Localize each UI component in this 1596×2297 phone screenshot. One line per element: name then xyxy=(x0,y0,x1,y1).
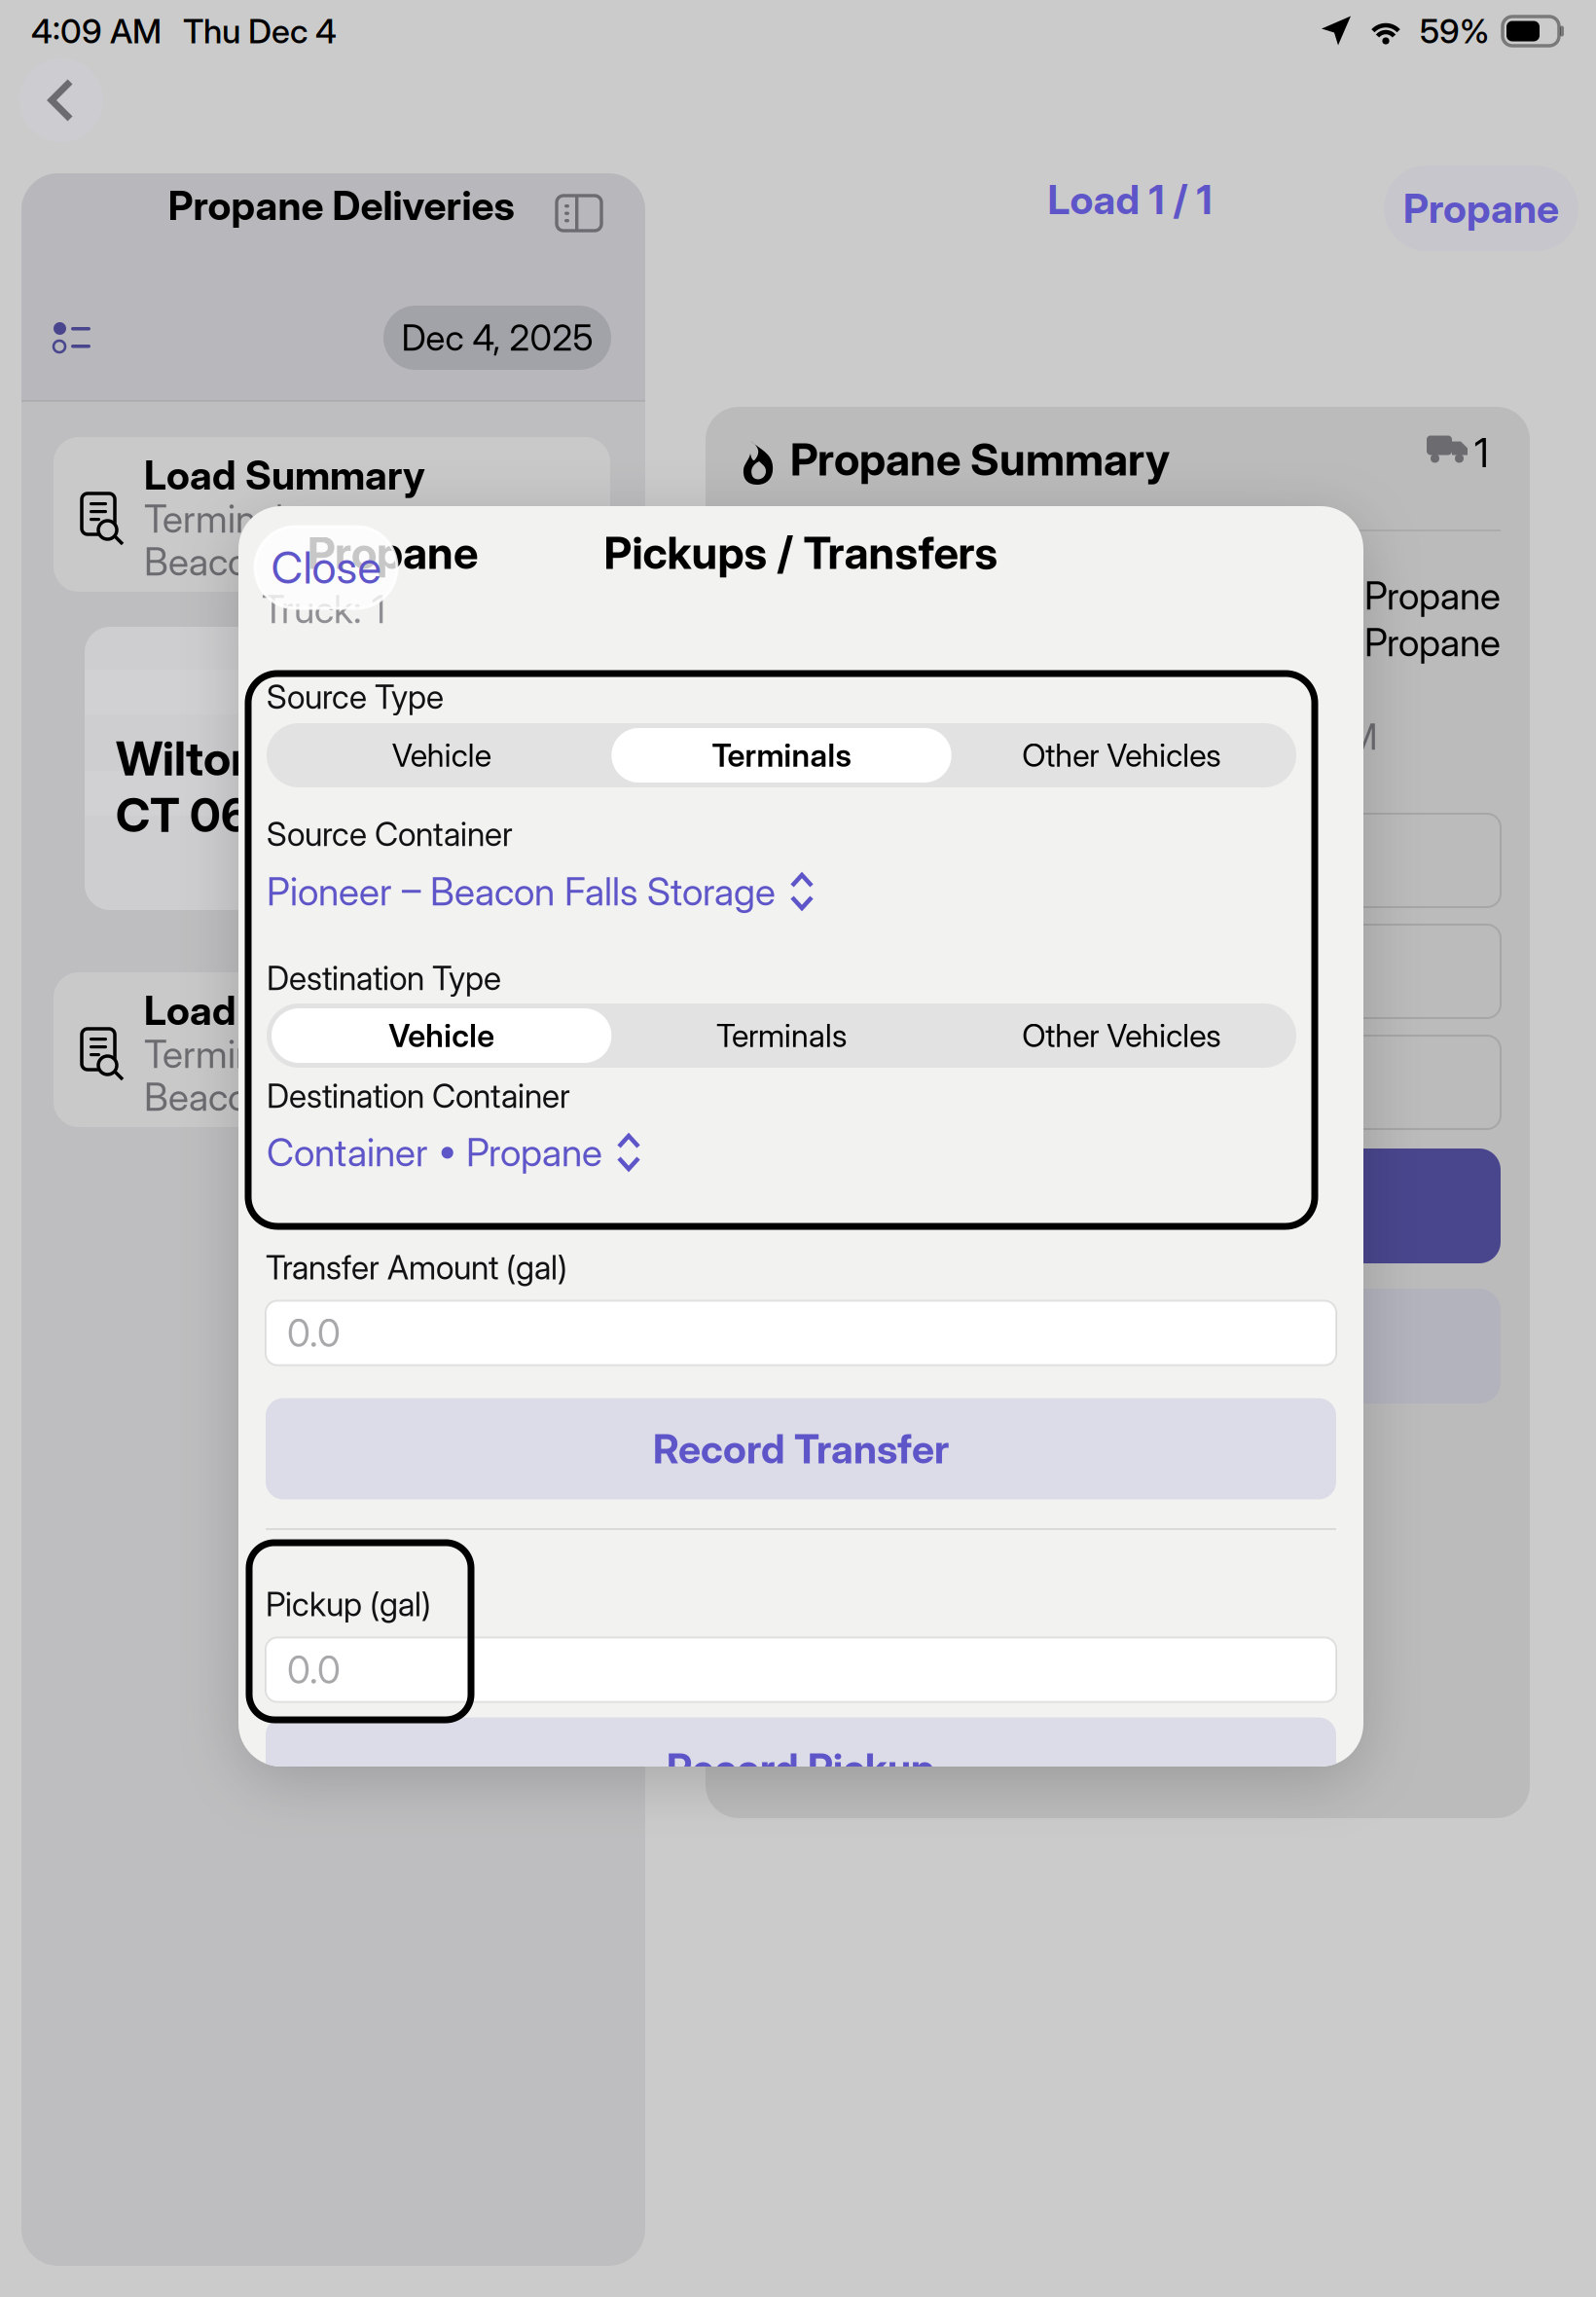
button[interactable]: Close xyxy=(255,527,397,608)
staticText: gal Propane xyxy=(1306,620,1501,665)
button[interactable]: Load Summary xyxy=(54,972,610,1127)
button[interactable]: Vehicle xyxy=(272,1008,611,1063)
button[interactable]: Toggle sidebar xyxy=(557,196,601,231)
staticText: Terminals: xyxy=(144,496,309,542)
button[interactable]: Terminals xyxy=(611,1008,951,1063)
staticText: Load Summary xyxy=(144,986,425,1035)
staticText: Load Summary xyxy=(144,451,425,499)
button[interactable]: Pioneer – Beacon Falls Storage xyxy=(267,866,1296,917)
staticText: Vehicle xyxy=(392,736,491,774)
staticText: Pioneer – Beacon Falls Storage xyxy=(267,869,776,914)
staticText: 59% xyxy=(1420,11,1489,51)
staticText: Terminals: xyxy=(144,1031,309,1077)
staticText: Beacon Falls xyxy=(144,539,351,584)
staticText: Other Vehicles xyxy=(1022,736,1221,774)
staticText: Terminals xyxy=(712,736,851,774)
button[interactable]: Terminals xyxy=(611,728,951,783)
button[interactable]: Container • Propane xyxy=(267,1127,1296,1178)
staticText: Terminals xyxy=(716,1017,847,1055)
button[interactable]: Wilton, xyxy=(85,627,610,910)
staticText: Pickup (gal) xyxy=(266,1585,431,1624)
staticText: Transfer Amount (gal) xyxy=(266,1248,567,1287)
staticText: Destination Type xyxy=(267,958,501,998)
staticText: Propane Deliveries xyxy=(168,181,514,230)
staticText: Source Type xyxy=(267,677,444,717)
staticText: 1 xyxy=(1474,428,1489,477)
staticText: Record Pickup xyxy=(667,1744,935,1792)
staticText: 0.0 xyxy=(287,1310,341,1356)
staticText: Other Vehicles xyxy=(1022,1017,1221,1055)
staticText: Beacon Falls xyxy=(144,1074,351,1120)
staticText: Source Container xyxy=(267,814,513,854)
staticText: Vehicle xyxy=(388,1017,495,1055)
button[interactable]: Propane xyxy=(1384,165,1578,251)
button[interactable]: Other Vehicles xyxy=(951,728,1291,783)
staticText: Propane xyxy=(1403,184,1559,233)
staticText: Wilton, xyxy=(116,730,270,787)
staticText: gal Propane xyxy=(1306,573,1501,619)
staticText: Container • Propane xyxy=(267,1130,602,1175)
staticText: CT 06897 xyxy=(116,786,334,843)
staticText: Destination Container xyxy=(267,1076,570,1116)
staticText: Propane xyxy=(308,526,478,580)
staticText: Thu Dec 4 xyxy=(183,11,337,51)
staticText: 4:09 AM xyxy=(31,11,162,51)
button[interactable]: Dec 4, 2025 xyxy=(383,306,611,370)
button[interactable]: Record Transfer xyxy=(266,1398,1336,1499)
button[interactable]: Load Summary xyxy=(54,437,610,592)
staticText: Pickups / Transfers xyxy=(604,526,998,580)
button[interactable]: Other Vehicles xyxy=(951,1008,1291,1063)
button[interactable]: Vehicle xyxy=(272,728,611,783)
button[interactable]: Stop list xyxy=(45,313,82,344)
staticText: Dec 4, 2025 xyxy=(401,316,593,359)
staticText: 0.0 xyxy=(287,1647,341,1693)
staticText: :48 PM xyxy=(1266,715,1377,758)
button[interactable]: Record Pickup xyxy=(266,1717,1336,1819)
staticText: Truck: 1 xyxy=(262,586,385,632)
staticText: Propane Summary xyxy=(790,433,1170,486)
button[interactable]: Back xyxy=(19,58,103,142)
staticText: Load 1 / 1 xyxy=(1048,175,1212,224)
staticText: Close xyxy=(271,541,381,594)
staticText: Record Transfer xyxy=(653,1425,949,1473)
